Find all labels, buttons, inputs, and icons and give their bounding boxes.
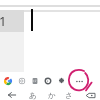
button[interactable]: GIF xyxy=(28,74,41,87)
button[interactable]: Settings xyxy=(55,74,68,87)
staticText: あ xyxy=(29,91,37,100)
staticText: か xyxy=(48,91,56,100)
button[interactable] xyxy=(0,10,24,32)
button[interactable]: Back xyxy=(5,88,19,100)
button[interactable]: か xyxy=(45,88,59,100)
button[interactable]: あ xyxy=(26,88,40,100)
button[interactable]: Stickers xyxy=(15,74,28,87)
button[interactable]: Clipboard xyxy=(41,74,54,87)
staticText: さ xyxy=(65,91,73,100)
button[interactable]: Backspace xyxy=(83,88,97,100)
staticText: 1 xyxy=(0,12,7,30)
button[interactable]: More options xyxy=(72,74,86,88)
button[interactable]: さ xyxy=(62,88,76,100)
button[interactable]: Google search xyxy=(1,74,14,87)
